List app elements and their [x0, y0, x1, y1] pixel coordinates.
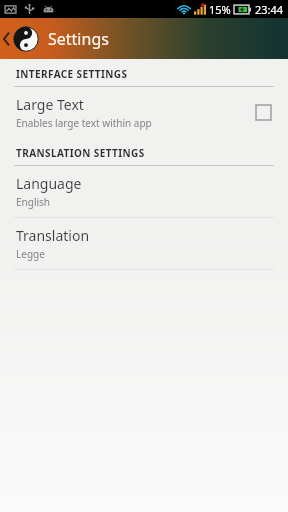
staticText: TRANSLATION SETTINGS — [16, 146, 145, 160]
staticText: INTERFACE SETTINGS — [16, 67, 128, 81]
staticText: Legge — [16, 247, 45, 261]
staticText: Settings — [48, 28, 109, 50]
button[interactable]: Translation — [0, 218, 288, 269]
staticText: 15% — [209, 2, 231, 17]
staticText: Large Text — [16, 95, 84, 114]
staticText: Enables large text within app — [16, 116, 152, 130]
staticText: English — [16, 195, 51, 209]
button[interactable]: Large Text — [0, 87, 288, 138]
staticText: Language — [16, 174, 82, 193]
other: Large Text checkbox — [255, 104, 272, 121]
button[interactable]: Navigate up — [0, 18, 288, 59]
staticText: 23:44 — [255, 2, 284, 17]
staticText: Translation — [16, 226, 90, 245]
button[interactable]: Language — [0, 166, 288, 217]
